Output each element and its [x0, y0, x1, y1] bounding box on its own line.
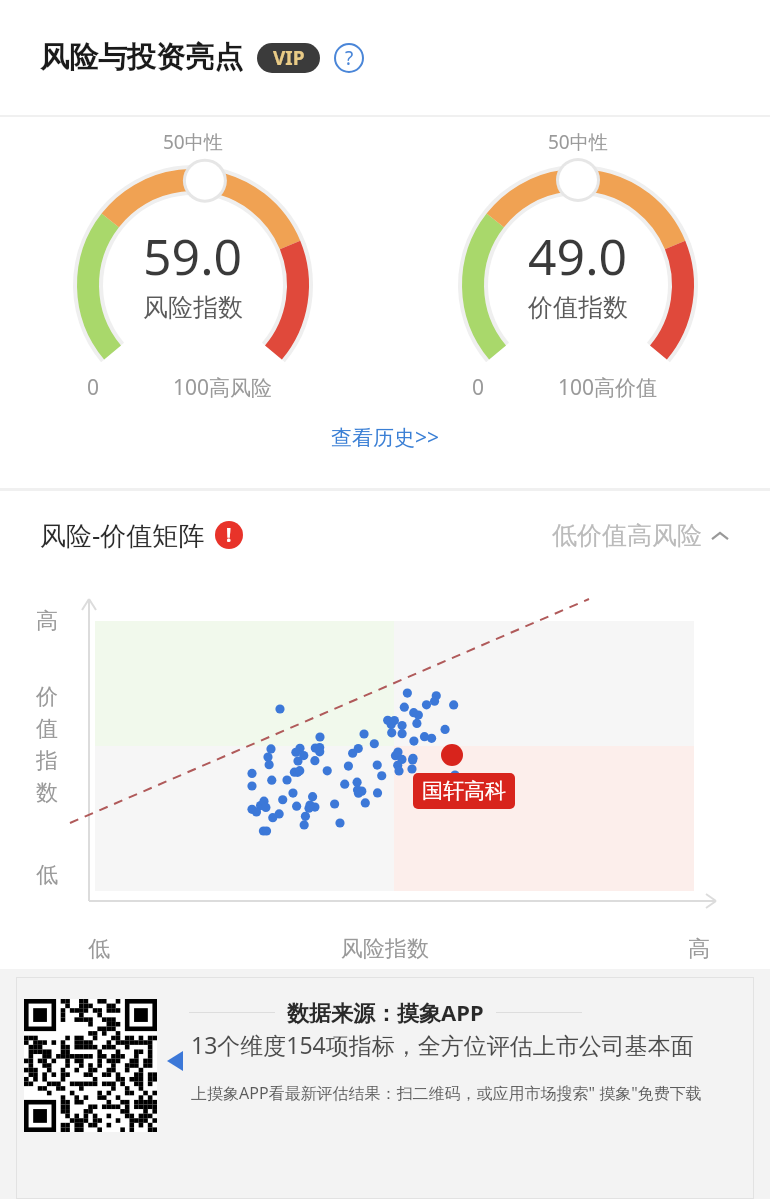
staticText: 风险与投资亮点	[40, 39, 243, 76]
staticText: 低	[88, 935, 110, 963]
staticText: 国轩高科	[422, 778, 506, 804]
button[interactable]: 帮助说明	[334, 43, 364, 73]
staticText: 50中性	[163, 129, 223, 155]
staticText: 值	[36, 715, 58, 743]
staticText: 查看历史>>	[331, 423, 440, 452]
staticText: 50中性	[548, 129, 608, 155]
staticText: ?	[345, 45, 354, 71]
staticText: 价值指数	[528, 292, 628, 323]
button[interactable]: 国轩高科	[413, 773, 515, 809]
staticText: VIP	[273, 45, 305, 71]
button[interactable]: 风险提示	[215, 521, 243, 549]
staticText: 上摸象APP看最新评估结果：扫二维码，或应用市场搜索" 摸象"免费下载	[191, 1082, 702, 1104]
staticText: 价	[36, 683, 58, 711]
staticText: 数	[36, 779, 58, 807]
staticText: !	[226, 522, 232, 548]
staticText: 低	[36, 861, 58, 889]
staticText: 高	[36, 607, 58, 635]
staticText: 49.0	[528, 222, 628, 290]
staticText: 指	[36, 747, 58, 775]
staticText: 高	[688, 935, 710, 963]
button[interactable]: 查看历史>>	[311, 417, 460, 458]
button[interactable]: VIP	[257, 43, 320, 73]
staticText: 100高风险	[173, 373, 273, 402]
staticText: 风险指数	[143, 292, 243, 323]
staticText: 59.0	[143, 222, 243, 290]
staticText: 风险-价值矩阵	[40, 517, 205, 553]
staticText: 13个维度154项指标，全方位评估上市公司基本面	[191, 1029, 694, 1060]
staticText: 数据来源：摸象APP	[287, 997, 484, 1027]
button[interactable]: 低价值高风险	[552, 520, 730, 551]
staticText: 风险指数	[341, 935, 429, 963]
staticText: 低价值高风险	[552, 520, 702, 551]
staticText: 0	[87, 373, 100, 402]
staticText: 0	[472, 373, 485, 402]
staticText: 100高价值	[558, 373, 658, 402]
